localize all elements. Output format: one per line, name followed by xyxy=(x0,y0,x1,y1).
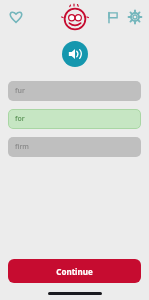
button[interactable]: Favorites xyxy=(4,5,28,29)
staticText: for xyxy=(15,114,25,124)
staticText: Continue xyxy=(56,266,93,277)
button[interactable]: Report xyxy=(101,6,123,28)
staticText: fur xyxy=(15,86,25,96)
button[interactable]: Continue xyxy=(8,259,141,283)
button[interactable]: Mascot xyxy=(60,2,90,32)
staticText: firm xyxy=(15,142,29,152)
button[interactable]: Play audio xyxy=(62,41,88,67)
button[interactable]: for xyxy=(8,109,141,129)
button[interactable]: Settings xyxy=(124,6,146,28)
button[interactable]: fur xyxy=(8,81,141,101)
button[interactable]: firm xyxy=(8,137,141,157)
